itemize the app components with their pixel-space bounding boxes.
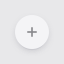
button[interactable]: Add [15, 15, 49, 49]
